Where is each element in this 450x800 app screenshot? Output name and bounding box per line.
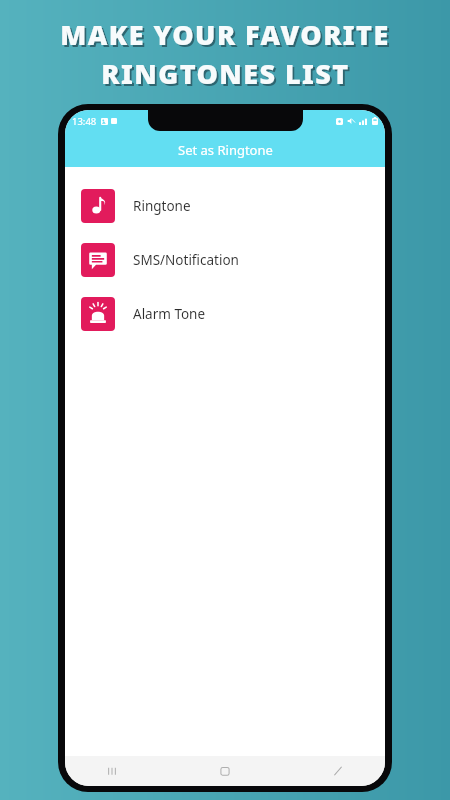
button[interactable]: Alarm Tone (65, 287, 385, 341)
button[interactable]: Recents (99, 764, 125, 778)
staticText: 13:48 (72, 115, 97, 128)
staticText: RINGTONES LIST (103, 57, 352, 94)
staticText: Set as Ringtone (178, 141, 273, 159)
button[interactable]: SMS/Notification (65, 233, 385, 287)
staticText: MAKE YOUR FAVORITE (60, 16, 390, 53)
button[interactable]: Back (325, 764, 351, 778)
staticText: RINGTONES LIST (101, 55, 350, 92)
staticText: MAKE YOUR FAVORITE (62, 18, 392, 55)
button[interactable]: Ringtone (65, 179, 385, 233)
button[interactable]: Home (212, 764, 238, 778)
staticText: Alarm Tone (133, 305, 206, 323)
staticText: Ringtone (133, 197, 191, 215)
staticText: SMS/Notification (133, 251, 239, 269)
